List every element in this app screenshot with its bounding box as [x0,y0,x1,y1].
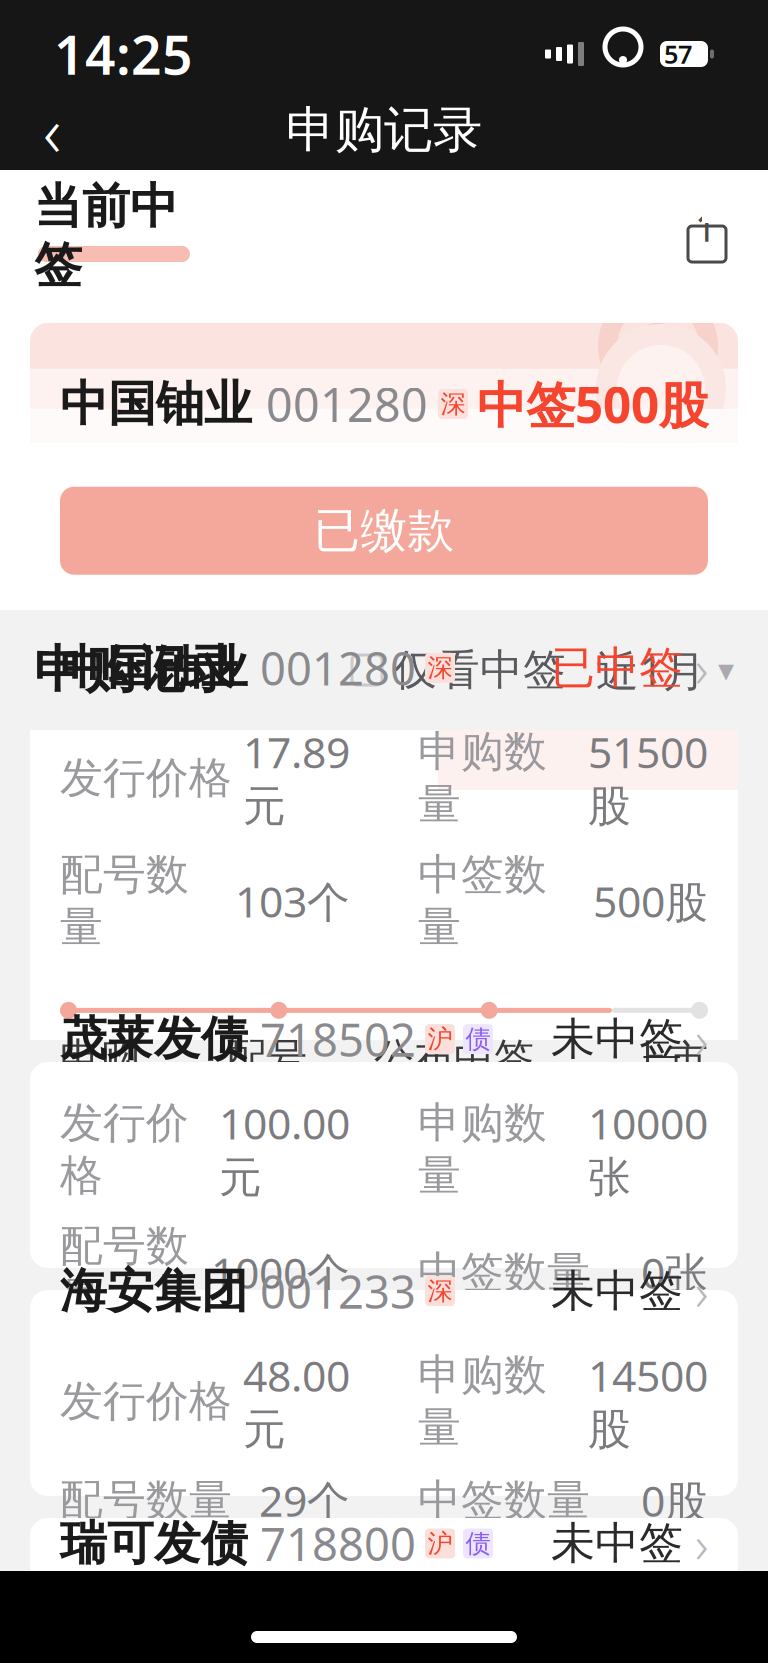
staticText: 瑞可发债 [60,1515,248,1572]
staticText: 债 [465,1528,490,1559]
staticText: 中国铀业 [60,374,252,433]
staticText: › [695,1005,708,1073]
staticText: 100.00元 [219,1599,350,1663]
staticText: 57 [664,37,692,71]
button[interactable]: 近1月 [596,642,734,698]
staticText: 已缴款 [313,502,454,559]
staticText: 债 [465,1023,490,1055]
staticText: 10000张 [588,1095,708,1204]
staticText: 未中签 [551,1264,683,1318]
staticText: 海安集团 [60,1262,248,1320]
staticText: 发行价格 [60,752,232,804]
staticText: 17.89元 [243,723,350,833]
staticText: 718800 [260,1513,416,1574]
staticText: 发行价格 [60,1375,232,1427]
staticText: › [695,634,708,701]
staticText: 申购数量 [418,1349,547,1454]
button[interactable]: 茂莱发债 [0,1062,768,1268]
staticText: 718502 [260,1009,416,1069]
button[interactable]: 返回 [14,92,90,168]
staticText: 11-24 [217,1090,317,1142]
staticText: 中签数量 [418,1246,590,1298]
staticText: 配号 [227,1033,307,1082]
staticText: 001280 [266,373,428,435]
staticText: › [695,1257,708,1325]
staticText: 申购记录 [286,100,482,160]
button[interactable]: 中国铀业 [0,730,768,1040]
button[interactable]: 分享 [680,209,734,263]
staticText: 深 [427,1276,452,1307]
staticText: 14:25 [54,19,193,89]
staticText: 48.00元 [243,1347,350,1456]
staticText: 当前中签 [34,177,178,295]
staticText: 中国铀业 [60,639,248,696]
staticText: 上市 [628,1035,708,1084]
staticText: 0张 [641,1244,708,1300]
staticText: 发行价格 [60,1097,189,1202]
staticText: 1000个 [211,1244,350,1300]
staticText: 未中签 [551,1516,683,1570]
staticText: 申购数量 [418,1097,547,1202]
staticText: 配号数量 [60,1474,232,1526]
staticText: 500股 [593,873,708,929]
staticText: ‹ [43,84,61,176]
staticText: 11-21 [60,1090,160,1142]
staticText: 申购记录 [34,639,238,701]
staticText: 中签数量 [418,1474,590,1526]
staticText: 未中签 [551,1012,683,1066]
staticText: ▾ [718,652,734,688]
staticText: 仅看中签 [394,644,566,696]
staticText: 配号数量 [60,1220,189,1325]
staticText: 申购 [60,1033,140,1082]
staticText: 沪 [427,1528,452,1559]
button[interactable]: 瑞可发债 [0,1518,768,1663]
staticText: 001280 [260,638,416,698]
staticText: 申购数量 [418,726,547,830]
staticText: 深 [427,652,452,683]
staticText: 14500股 [588,1347,708,1456]
staticText: 29个 [259,1472,350,1528]
staticText: 近1月 [596,642,706,698]
button[interactable]: 仅看中签 [352,644,566,696]
staticText: 中签数量 [418,848,547,953]
staticText: 001233 [260,1261,416,1321]
staticText: 0股 [641,1472,708,1528]
button[interactable]: 海安集团 [0,1290,768,1496]
staticText: 中签500股 [477,371,708,437]
staticText: 已中签 [551,641,683,695]
staticText: 11-25 [404,1090,504,1142]
staticText: 沪 [427,1023,452,1055]
staticText: › [695,1510,708,1577]
staticText: 公布中签 [374,1033,534,1082]
staticText: 待公布 [591,1092,708,1140]
staticText: 申购数量 [418,1601,547,1663]
staticText: 100.00元 [219,1095,350,1204]
staticText: 103个 [235,873,350,929]
staticText: 茂莱发债 [60,1010,248,1068]
staticText: 配号数量 [60,848,189,953]
staticText: 51500股 [588,723,708,833]
staticText: 深 [440,388,465,419]
button[interactable]: 已缴款 [30,487,738,575]
staticText: ↑ [690,205,724,251]
